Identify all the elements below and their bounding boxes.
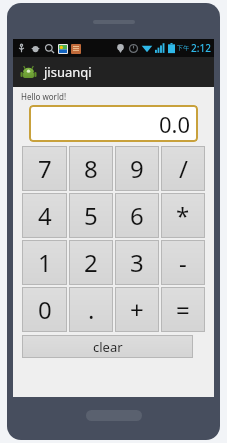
button[interactable]: 1 bbox=[22, 240, 67, 285]
staticText: + bbox=[130, 293, 144, 326]
button[interactable]: clear bbox=[22, 335, 193, 358]
button[interactable]: 0 bbox=[22, 287, 67, 332]
button[interactable]: 5 bbox=[69, 193, 113, 238]
staticText: 6 bbox=[130, 199, 144, 232]
staticText: - bbox=[179, 246, 187, 279]
staticText: 下午 bbox=[177, 44, 189, 52]
staticText: * bbox=[176, 199, 190, 232]
staticText: 4 bbox=[38, 199, 52, 232]
button[interactable]: 8 bbox=[69, 146, 113, 191]
staticText: / bbox=[179, 152, 188, 185]
button[interactable]: 2 bbox=[69, 240, 113, 285]
button[interactable]: 6 bbox=[115, 193, 159, 238]
staticText: 8 bbox=[84, 152, 98, 185]
button[interactable]: 4 bbox=[22, 193, 67, 238]
button[interactable]: . bbox=[69, 287, 113, 332]
button[interactable]: = bbox=[161, 287, 205, 332]
staticText: 9 bbox=[130, 152, 144, 185]
button[interactable]: 3 bbox=[115, 240, 159, 285]
staticText: . bbox=[88, 293, 95, 326]
staticText: Hello world! bbox=[21, 91, 67, 102]
button[interactable]: 0.0 bbox=[29, 105, 198, 142]
staticText: 5 bbox=[84, 199, 98, 232]
button[interactable]: + bbox=[115, 287, 159, 332]
button[interactable]: 9 bbox=[115, 146, 159, 191]
button[interactable]: / bbox=[161, 146, 205, 191]
button[interactable]: - bbox=[161, 240, 205, 285]
staticText: 0.0 bbox=[158, 109, 190, 139]
button[interactable]: * bbox=[161, 193, 205, 238]
staticText: 2 bbox=[84, 246, 98, 279]
staticText: 3 bbox=[130, 246, 144, 279]
staticText: 0 bbox=[38, 293, 52, 326]
staticText: 7 bbox=[38, 152, 52, 185]
staticText: 1 bbox=[38, 246, 52, 279]
staticText: clear bbox=[93, 338, 123, 356]
button[interactable]: 7 bbox=[22, 146, 67, 191]
staticText: 2:12 bbox=[191, 41, 211, 55]
staticText: = bbox=[176, 293, 190, 326]
staticText: jisuanqi bbox=[44, 63, 92, 81]
